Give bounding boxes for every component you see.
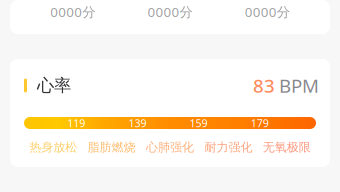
staticText: 热身放松	[29, 140, 77, 155]
button[interactable]: 0000分	[0, 0, 340, 34]
staticText: 0000分	[147, 3, 192, 21]
staticText: 159	[190, 116, 208, 130]
staticText: 139	[128, 116, 146, 130]
staticText: 179	[251, 116, 269, 130]
staticText: 脂肪燃烧	[88, 140, 136, 155]
button[interactable]: 心率	[0, 59, 340, 167]
staticText: 心肺强化	[146, 140, 194, 155]
staticText: 心率	[37, 75, 71, 96]
staticText: BPM	[279, 73, 319, 98]
staticText: 0000分	[245, 3, 290, 21]
staticText: 耐力强化	[204, 140, 252, 155]
staticText: 119	[67, 116, 85, 130]
staticText: 83	[253, 73, 275, 98]
staticText: 0000分	[50, 3, 95, 21]
staticText: 无氧极限	[263, 140, 311, 155]
